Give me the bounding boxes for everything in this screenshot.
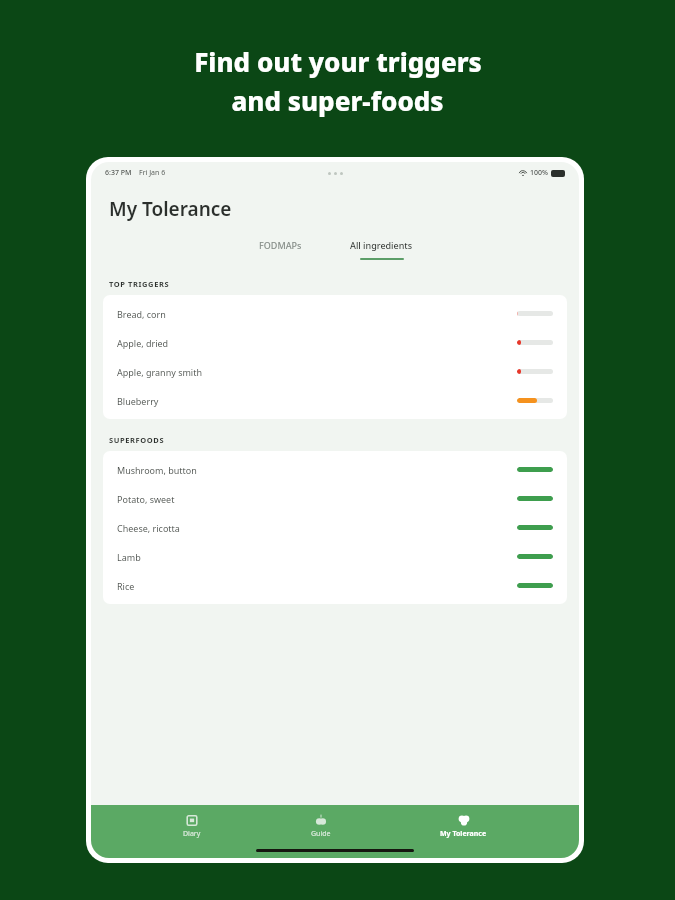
staticText: Diary: [183, 829, 201, 839]
staticText: Mushroom, button: [117, 464, 197, 476]
button[interactable]: My Tolerance: [422, 812, 505, 841]
staticText: Apple, dried: [117, 337, 169, 349]
staticText: Find out your triggers: [194, 44, 482, 79]
staticText: SUPERFOODS: [109, 435, 165, 445]
button[interactable]: Diary: [165, 812, 219, 841]
button[interactable]: Rice: [103, 571, 567, 600]
staticText: Bread, corn: [117, 308, 166, 320]
button[interactable]: Guide: [293, 812, 349, 841]
staticText: Guide: [311, 829, 331, 839]
other: My Tolerance: [458, 814, 470, 826]
staticText: 6:37 PM: [105, 168, 132, 178]
button[interactable]: All ingredients: [336, 236, 427, 263]
staticText: My Tolerance: [440, 829, 487, 839]
other: Guide: [315, 814, 327, 826]
button[interactable]: Bread, corn: [103, 299, 567, 328]
button[interactable]: Apple, dried: [103, 328, 567, 357]
staticText: Lamb: [117, 551, 141, 563]
staticText: Rice: [117, 580, 135, 592]
button[interactable]: Cheese, ricotta: [103, 513, 567, 542]
staticText: Potato, sweet: [117, 493, 175, 505]
button[interactable]: Potato, sweet: [103, 484, 567, 513]
staticText: TOP TRIGGERS: [109, 279, 170, 289]
button[interactable]: Mushroom, button: [103, 455, 567, 484]
staticText: FODMAPs: [259, 239, 302, 251]
button[interactable]: Lamb: [103, 542, 567, 571]
button[interactable]: FODMAPs: [244, 236, 316, 263]
button[interactable]: Apple, granny smith: [103, 357, 567, 386]
staticText: Fri Jan 6: [139, 168, 166, 178]
staticText: and super-foods: [231, 83, 444, 118]
staticText: Cheese, ricotta: [117, 522, 180, 534]
button[interactable]: Blueberry: [103, 386, 567, 415]
other: Diary: [186, 814, 198, 826]
staticText: 100%: [530, 168, 548, 178]
staticText: All ingredients: [350, 239, 413, 251]
staticText: My Tolerance: [109, 196, 232, 222]
staticText: Blueberry: [117, 395, 159, 407]
staticText: Apple, granny smith: [117, 366, 203, 378]
